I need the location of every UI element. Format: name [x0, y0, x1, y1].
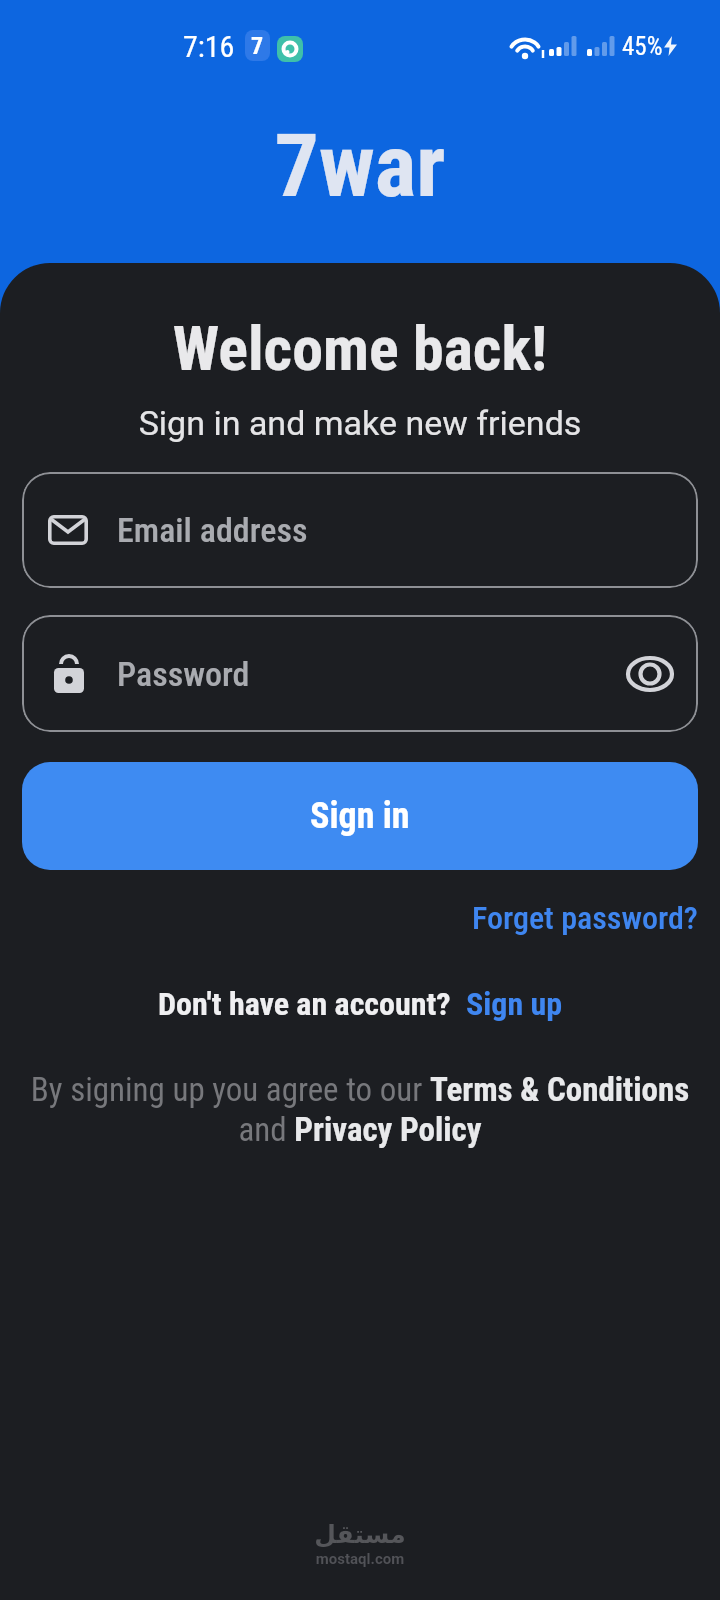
button[interactable]: Password	[22, 615, 698, 732]
staticText: Sign in	[310, 795, 410, 837]
staticText: mostaql.com	[0, 1550, 720, 1568]
staticText: Password	[117, 654, 250, 694]
staticText: 45%	[622, 32, 663, 61]
button[interactable]: Sign in	[22, 762, 698, 870]
staticText: 7war	[0, 114, 720, 217]
staticText: 7:16	[183, 29, 235, 64]
staticText: By signing up you agree to our Terms & C…	[0, 1070, 720, 1150]
staticText: Don't have an account?	[158, 985, 451, 1023]
staticText: 7	[251, 32, 264, 60]
staticText: Sign in and make new friends	[0, 403, 720, 443]
staticText: Welcome back!	[0, 312, 720, 385]
staticText: Forget password?	[472, 899, 698, 937]
staticText: Sign up	[466, 985, 563, 1023]
button[interactable]: Email address	[22, 472, 698, 588]
button[interactable]: Sign up	[466, 985, 563, 1023]
staticText: مستقل	[0, 1520, 720, 1549]
staticText: Email address	[117, 510, 308, 550]
button[interactable]: Forget password?	[472, 899, 698, 937]
